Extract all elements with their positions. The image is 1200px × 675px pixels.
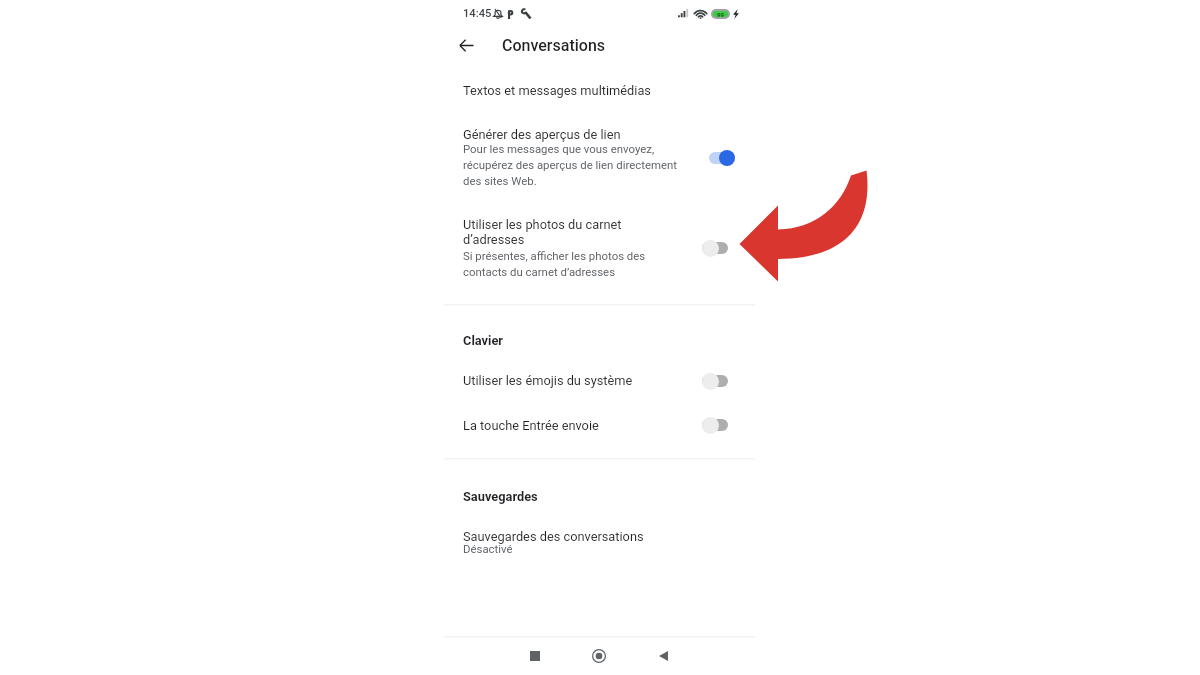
staticText: Conversations — [502, 36, 606, 55]
staticText: Générer des aperçus de lien — [463, 127, 621, 142]
button[interactable]: Recent apps — [517, 639, 553, 673]
button[interactable]: Générer des aperçus de lien, activé — [699, 147, 735, 167]
staticText: Textos et messages multimédias — [463, 83, 651, 98]
button[interactable]: Home — [581, 639, 617, 673]
staticText: Pour les messages que vous envoyez, récu… — [463, 142, 677, 188]
staticText: Utiliser les émojis du système — [463, 373, 633, 388]
staticText: Sauvegardes des conversations — [463, 529, 644, 544]
button[interactable]: La touche Entrée envoie — [444, 409, 755, 444]
staticText: Clavier — [463, 333, 503, 348]
button[interactable]: Back — [645, 639, 681, 673]
staticText: Sauvegardes — [463, 489, 538, 504]
button[interactable]: Désactivé — [698, 414, 734, 434]
staticText: La touche Entrée envoie — [463, 418, 599, 433]
button[interactable]: Utiliser les photos du carnet d’adresses — [444, 211, 755, 289]
button[interactable]: Sauvegardes des conversations — [444, 522, 755, 566]
button[interactable]: Générer des aperçus de lien — [444, 120, 755, 197]
button[interactable]: Navigate up — [451, 30, 481, 60]
button[interactable]: Textos et messages multimédias — [444, 73, 755, 107]
staticText: 99 — [717, 11, 724, 17]
staticText: Utiliser les photos du carnet d’adresses — [463, 217, 626, 247]
button[interactable]: Utiliser les émojis du système — [444, 364, 755, 399]
button[interactable]: Désactivé — [698, 370, 734, 390]
staticText: Désactivé — [463, 542, 513, 555]
staticText: Si présentes, afficher les photos des co… — [463, 249, 649, 279]
staticText: 14:45 — [463, 7, 492, 20]
button[interactable]: Désactivé — [698, 237, 734, 257]
